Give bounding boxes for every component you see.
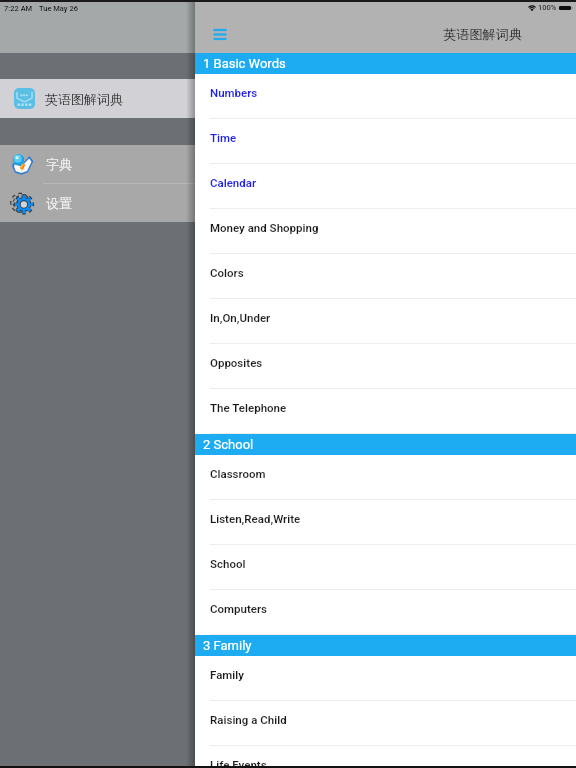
button[interactable]: Money and Shopping — [195, 209, 576, 254]
staticText: Listen,Read,Write — [210, 512, 301, 525]
staticText: Computers — [210, 602, 268, 615]
button[interactable]: 设置 — [0, 184, 576, 222]
button[interactable]: Family — [195, 656, 576, 701]
button[interactable]: In,On,Under — [195, 299, 576, 344]
button[interactable]: Menu — [207, 24, 233, 46]
staticText: School — [210, 557, 246, 570]
staticText: Life Events — [210, 758, 267, 768]
staticText: Opposites — [210, 356, 263, 369]
staticText: 3 Family — [203, 638, 252, 653]
button[interactable]: 3 Family — [195, 635, 576, 656]
button[interactable]: Colors — [195, 254, 576, 299]
button[interactable]: Time — [195, 119, 576, 164]
button[interactable]: School — [195, 545, 576, 590]
staticText: Colors — [210, 266, 244, 279]
staticText: 2 School — [203, 437, 254, 452]
button[interactable]: Opposites — [195, 344, 576, 389]
staticText: Raising a Child — [210, 713, 287, 726]
staticText: In,On,Under — [210, 311, 271, 324]
staticText: Classroom — [210, 467, 266, 480]
button[interactable]: 字典 — [0, 145, 576, 183]
staticText: 设置 — [46, 195, 72, 211]
staticText: 1 Basic Words — [203, 56, 286, 71]
staticText: Tue May 26 — [39, 4, 78, 13]
button[interactable]: 英语图解词典 — [0, 79, 576, 118]
button[interactable]: The Telephone — [195, 389, 576, 434]
button[interactable]: Calendar — [195, 164, 576, 209]
staticText: 英语图解词典 — [443, 26, 523, 43]
staticText: Numbers — [210, 86, 258, 99]
button[interactable]: 1 Basic Words — [195, 53, 576, 74]
button[interactable]: Numbers — [195, 74, 576, 119]
staticText: Money and Shopping — [210, 221, 319, 234]
staticText: 100% — [538, 3, 557, 12]
button[interactable]: Listen,Read,Write — [195, 500, 576, 545]
staticText: 7:22 AM — [4, 4, 33, 13]
button[interactable]: Computers — [195, 590, 576, 635]
button[interactable]: Life Events — [195, 746, 576, 768]
button[interactable]: Classroom — [195, 455, 576, 500]
staticText: 英语图解词典 — [45, 91, 123, 107]
staticText: 字典 — [46, 156, 72, 172]
staticText: The Telephone — [210, 401, 287, 414]
staticText: Time — [210, 131, 237, 144]
staticText: Calendar — [210, 176, 257, 189]
button[interactable]: 2 School — [195, 434, 576, 455]
button[interactable]: Raising a Child — [195, 701, 576, 746]
staticText: Family — [210, 668, 244, 681]
